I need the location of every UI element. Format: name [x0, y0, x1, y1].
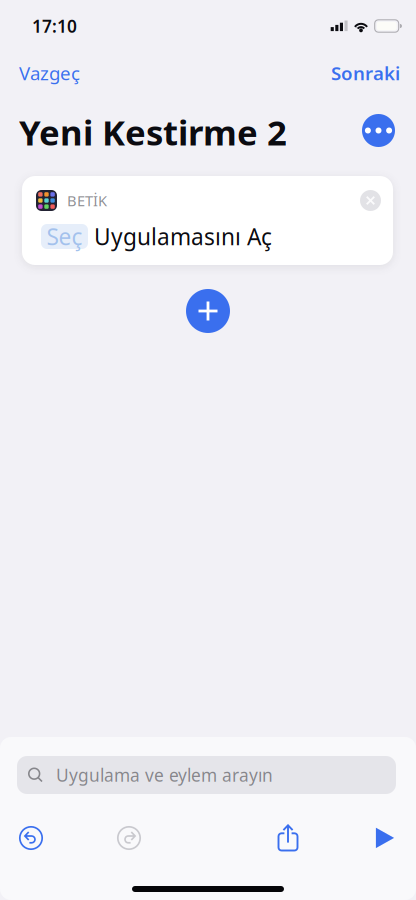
staticText: Uygulamasını Aç	[94, 221, 272, 251]
button[interactable]: Share	[266, 816, 310, 860]
button[interactable]: Add action	[186, 289, 230, 333]
button[interactable]: More options	[362, 114, 395, 147]
button[interactable]: Run	[363, 816, 407, 860]
button[interactable]: Sonraki	[331, 57, 400, 89]
button[interactable]: Remove action	[360, 190, 381, 211]
button[interactable]: Redo	[107, 816, 151, 860]
staticText: BETİK	[67, 191, 107, 210]
staticText: Yeni Kestirme 2	[19, 109, 287, 155]
button[interactable]: Uygulama ve eylem arayın	[17, 756, 396, 794]
button[interactable]: Undo	[9, 816, 53, 860]
staticText: 17:10	[32, 14, 77, 37]
staticText: Vazgeç	[19, 61, 80, 85]
button[interactable]: Vazgeç	[19, 57, 80, 89]
staticText: Uygulama ve eylem arayın	[56, 763, 273, 786]
staticText: Seç	[46, 221, 82, 251]
staticText: Sonraki	[331, 61, 400, 85]
